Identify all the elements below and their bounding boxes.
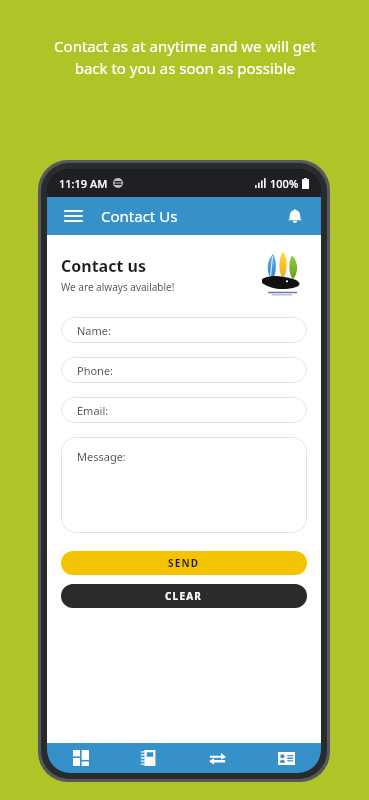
staticText: Contact Us [101, 206, 178, 226]
staticText: We are always available! [61, 280, 175, 294]
button[interactable]: Transfer [183, 743, 252, 773]
staticText: Email: [77, 403, 109, 418]
button[interactable]: Name: [61, 317, 307, 343]
staticText: Name: [77, 323, 111, 338]
staticText: Contact as at anytime and we will get ba… [54, 36, 316, 79]
button[interactable]: SEND [61, 551, 307, 575]
button[interactable]: Open navigation menu [57, 200, 89, 232]
staticText: Contact us [61, 255, 146, 277]
button[interactable]: Notifications [279, 200, 311, 232]
button[interactable]: Notebook [115, 743, 183, 773]
button[interactable]: Contacts [252, 743, 321, 773]
staticText: Phone: [77, 363, 114, 378]
staticText: Message: [77, 449, 126, 464]
button[interactable]: Dashboard [47, 743, 115, 773]
staticText: 100% [270, 176, 299, 191]
button[interactable]: CLEAR [61, 584, 307, 608]
button[interactable]: Phone: [61, 357, 307, 383]
staticText: SEND [168, 556, 200, 570]
button[interactable]: Email: [61, 397, 307, 423]
staticText: 11:19 AM [59, 176, 108, 191]
button[interactable]: Message: [61, 437, 307, 533]
staticText: CLEAR [165, 589, 203, 603]
